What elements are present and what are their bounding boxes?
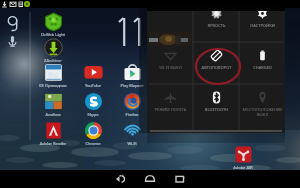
staticText: Play Маркет bbox=[113, 83, 151, 88]
button[interactable]: Wi-Fi off bbox=[147, 42, 193, 84]
staticText: ES Проводник bbox=[34, 83, 72, 88]
button[interactable]: Google Search bbox=[3, 15, 22, 31]
staticText: Firefox bbox=[113, 112, 151, 117]
staticText: МЕСТОПОЛОЖЕНИЕ ВЫКЛ bbox=[241, 107, 284, 117]
staticText: НАСТРОЙКИ bbox=[241, 23, 284, 28]
button[interactable]: Auto rotate bbox=[193, 42, 239, 84]
button[interactable]: ES File Explorer bbox=[34, 63, 72, 91]
button[interactable]: YouTube bbox=[74, 63, 112, 91]
button[interactable]: Downloader bbox=[34, 38, 72, 66]
button[interactable]: Gallery bbox=[34, 92, 72, 120]
button[interactable]: Home bbox=[138, 173, 162, 185]
button[interactable]: Back bbox=[108, 173, 132, 185]
staticText: Adobe Reader bbox=[34, 141, 72, 146]
button[interactable]: WiFi tool bbox=[113, 121, 151, 149]
button[interactable]: Chrome bbox=[74, 121, 112, 149]
button[interactable]: Firefox bbox=[113, 92, 151, 120]
staticText: Альбом bbox=[34, 112, 72, 117]
staticText: РЕЖИМ ПОЛЕТА bbox=[149, 107, 192, 112]
staticText: Adobe AIR bbox=[224, 165, 262, 170]
button[interactable]: Adobe Reader bbox=[34, 121, 72, 149]
staticText: CHARGED bbox=[241, 65, 284, 70]
button[interactable]: Airplane mode bbox=[147, 84, 193, 126]
button[interactable]: Skype bbox=[74, 92, 112, 120]
button[interactable]: Location off bbox=[239, 84, 285, 126]
button[interactable]: Bluetooth bbox=[193, 84, 239, 126]
staticText: Chrome bbox=[74, 141, 112, 146]
button[interactable]: Play Store bbox=[113, 63, 151, 91]
button[interactable]: Recents bbox=[168, 173, 192, 185]
staticText: ЯРКОСТЬ bbox=[195, 23, 238, 28]
staticText: Skype bbox=[74, 112, 112, 117]
button[interactable]: Brightness bbox=[193, 0, 239, 42]
button[interactable]: Dr Web Light bbox=[34, 12, 72, 40]
staticText: WI-FI ВЫКЛ bbox=[149, 65, 192, 70]
button[interactable]: Settings bbox=[239, 0, 285, 42]
staticText: BLUETOOTH bbox=[195, 107, 238, 112]
staticText: АВТОПОВОРОТ bbox=[195, 65, 238, 70]
button[interactable]: Adobe AIR bbox=[224, 145, 262, 173]
button[interactable]: Battery charged bbox=[239, 42, 285, 84]
staticText: ZArchiver bbox=[34, 58, 72, 63]
staticText: YouTube bbox=[74, 83, 112, 88]
button[interactable]: Voice Search bbox=[3, 33, 22, 49]
staticText: Dr.Web Light bbox=[34, 32, 72, 37]
staticText: Wi-Fi bbox=[113, 141, 151, 146]
